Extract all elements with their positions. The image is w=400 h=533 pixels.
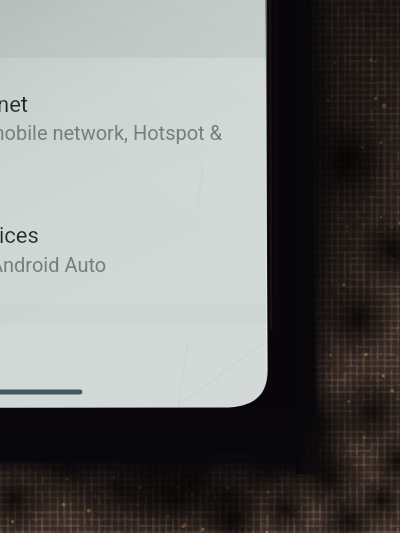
staticText: net (0, 92, 29, 118)
staticText: mobile network, Hotspot & (0, 121, 223, 144)
staticText: ices (0, 223, 39, 249)
staticText: Android Auto (0, 253, 107, 276)
button[interactable]: ices (0, 209, 250, 275)
button[interactable]: net (0, 78, 250, 144)
